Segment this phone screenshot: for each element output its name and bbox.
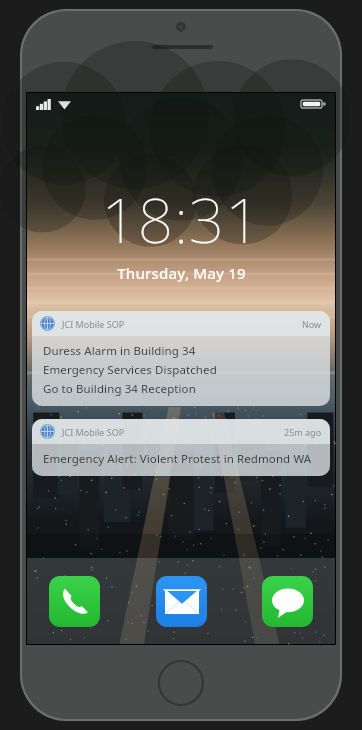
staticText: Emergency Alert: Violent Protest in Redm… [43, 451, 312, 467]
staticText: Thursday, May 19 [117, 263, 246, 283]
staticText: 25m ago [284, 426, 322, 438]
staticText: Emergency Services Dispatched [43, 362, 217, 378]
button[interactable]: Mail [156, 576, 207, 627]
button[interactable]: JCI Mobile SOP [32, 419, 330, 476]
staticText: JCI Mobile SOP [62, 318, 125, 330]
button[interactable]: Messages [262, 576, 313, 627]
staticText: 18:31 [101, 177, 262, 261]
staticText: Duress Alarm in Building 34 [43, 343, 196, 359]
staticText: Now [302, 318, 322, 330]
staticText: Go to Building 34 Reception [43, 381, 196, 397]
button[interactable]: Phone [49, 576, 100, 627]
staticText: JCI Mobile SOP [62, 426, 125, 438]
button[interactable]: JCI Mobile SOP [32, 311, 330, 406]
button[interactable]: Home [153, 655, 209, 711]
